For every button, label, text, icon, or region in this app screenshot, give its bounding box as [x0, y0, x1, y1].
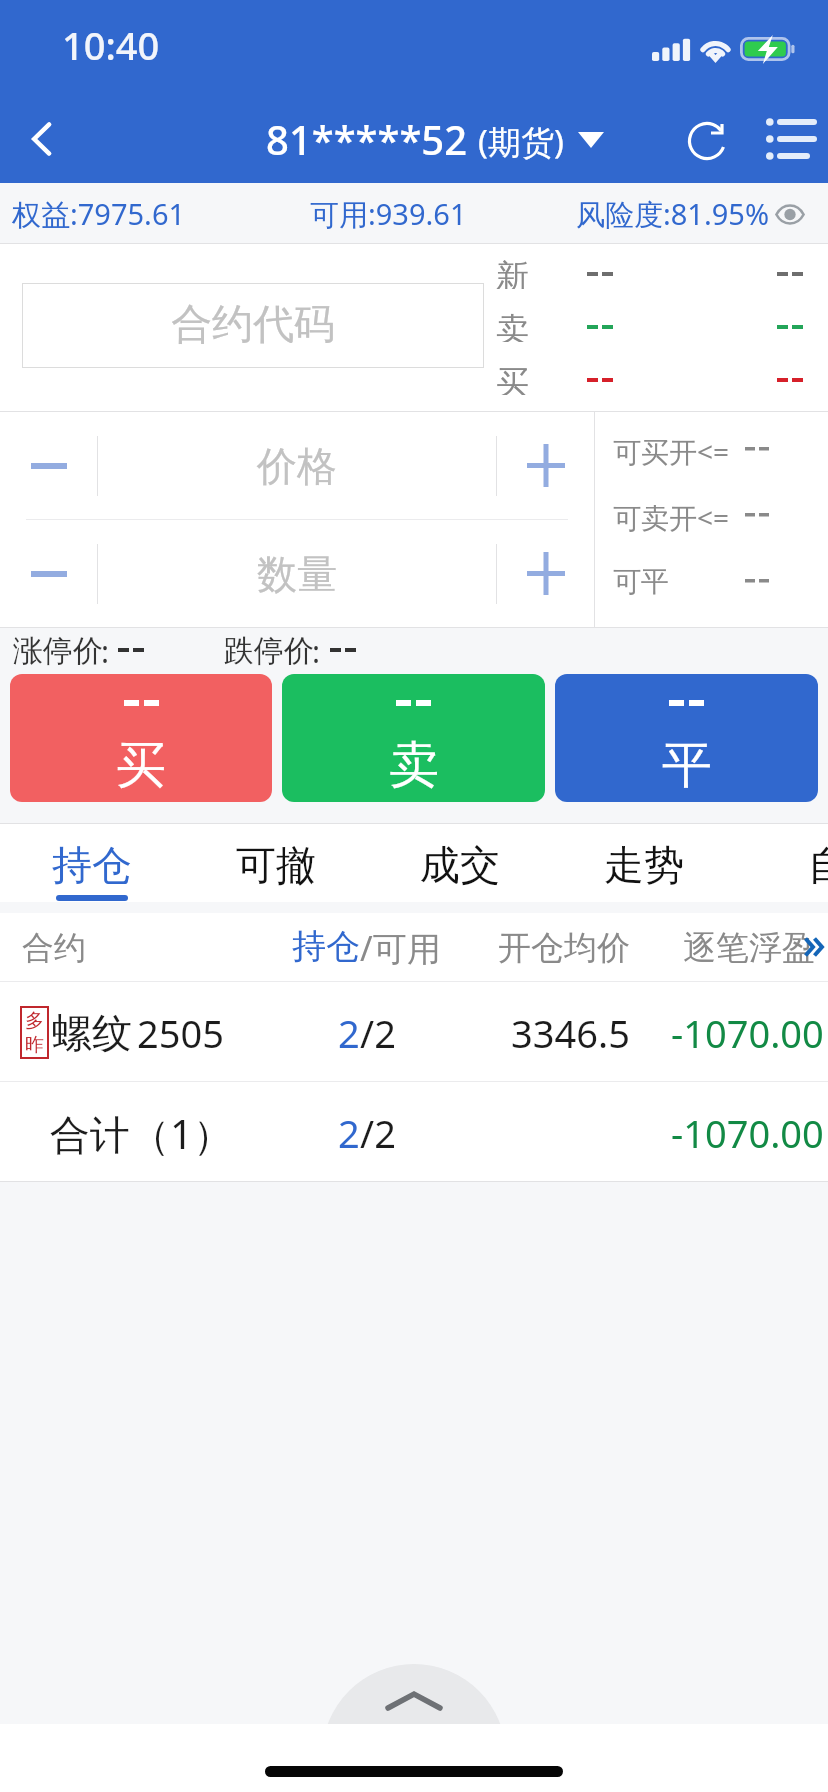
staticText: 3346.5: [511, 1007, 630, 1059]
button[interactable]: 合约代码: [22, 283, 484, 368]
staticText: 价格: [257, 441, 337, 491]
staticText: /可用: [360, 925, 441, 971]
staticText: 螺纹: [52, 1008, 132, 1058]
staticText: 持仓: [292, 925, 360, 968]
button[interactable]: 自: [736, 824, 828, 902]
staticText: 平: [662, 734, 712, 797]
button[interactable]: Decrease 数量: [0, 520, 97, 627]
button[interactable]: 走势: [552, 824, 736, 902]
staticText: /2: [360, 1107, 396, 1159]
button[interactable]: 卖: [282, 674, 545, 802]
staticText: 权益:7975.61: [12, 194, 186, 234]
button[interactable]: Menu: [752, 94, 828, 183]
staticText: 10:40: [62, 19, 160, 71]
staticText: 涨停价: [13, 632, 103, 670]
staticText: 2: [338, 1107, 360, 1159]
button[interactable]: 买: [10, 674, 272, 802]
staticText: 持仓: [52, 840, 132, 890]
staticText: 2: [338, 1007, 360, 1059]
staticText: 可平: [613, 564, 669, 598]
staticText: (期货): [478, 119, 564, 164]
button[interactable]: 平: [555, 674, 818, 802]
staticText: -1070.00: [671, 1007, 824, 1059]
button[interactable]: 价格: [98, 412, 496, 519]
staticText: 合计（1）: [50, 1106, 233, 1161]
button[interactable]: Refresh: [665, 94, 749, 183]
button[interactable]: Expand panel: [322, 1664, 506, 1724]
staticText: 合约: [22, 928, 86, 968]
staticText: /2: [360, 1007, 396, 1059]
staticText: 数量: [257, 549, 337, 599]
staticText: 自: [808, 840, 828, 890]
button[interactable]: 多: [0, 982, 828, 1082]
button[interactable]: Decrease 价格: [0, 412, 97, 519]
staticText: :: [101, 631, 110, 672]
button[interactable]: Increase 数量: [497, 520, 594, 627]
staticText: 新: [496, 256, 529, 289]
button[interactable]: 数量: [98, 520, 496, 627]
button[interactable]: 成交: [368, 824, 552, 902]
staticText: 买: [496, 362, 529, 395]
button[interactable]: Toggle visibility: [764, 189, 816, 239]
staticText: 成交: [420, 840, 500, 890]
staticText: :: [312, 631, 321, 672]
staticText: 卖: [496, 309, 529, 342]
button[interactable]: Increase 价格: [497, 412, 594, 519]
staticText: 买: [116, 734, 166, 797]
staticText: 走势: [604, 840, 684, 890]
staticText: 昨: [25, 1033, 44, 1057]
staticText: 风险度:81.95%: [576, 194, 769, 234]
staticText: 可撤: [236, 840, 316, 890]
staticText: 可用:939.61: [310, 194, 467, 234]
staticText: 多: [25, 1009, 44, 1033]
staticText: 可买开<=: [613, 432, 730, 466]
staticText: 跌停价: [224, 632, 314, 670]
staticText: 2505: [137, 1007, 224, 1059]
button[interactable]: 持仓: [0, 824, 184, 902]
staticText: 卖: [389, 734, 439, 797]
button[interactable]: 可撤: [184, 824, 368, 902]
staticText: 可卖开<=: [613, 498, 730, 532]
staticText: 合约代码: [171, 299, 335, 351]
staticText: -1070.00: [671, 1107, 824, 1159]
staticText: 逐笔浮盈: [683, 927, 815, 969]
button[interactable]: Back: [0, 94, 86, 183]
staticText: 81*****52: [266, 112, 468, 166]
staticText: 开仓均价: [498, 927, 630, 969]
